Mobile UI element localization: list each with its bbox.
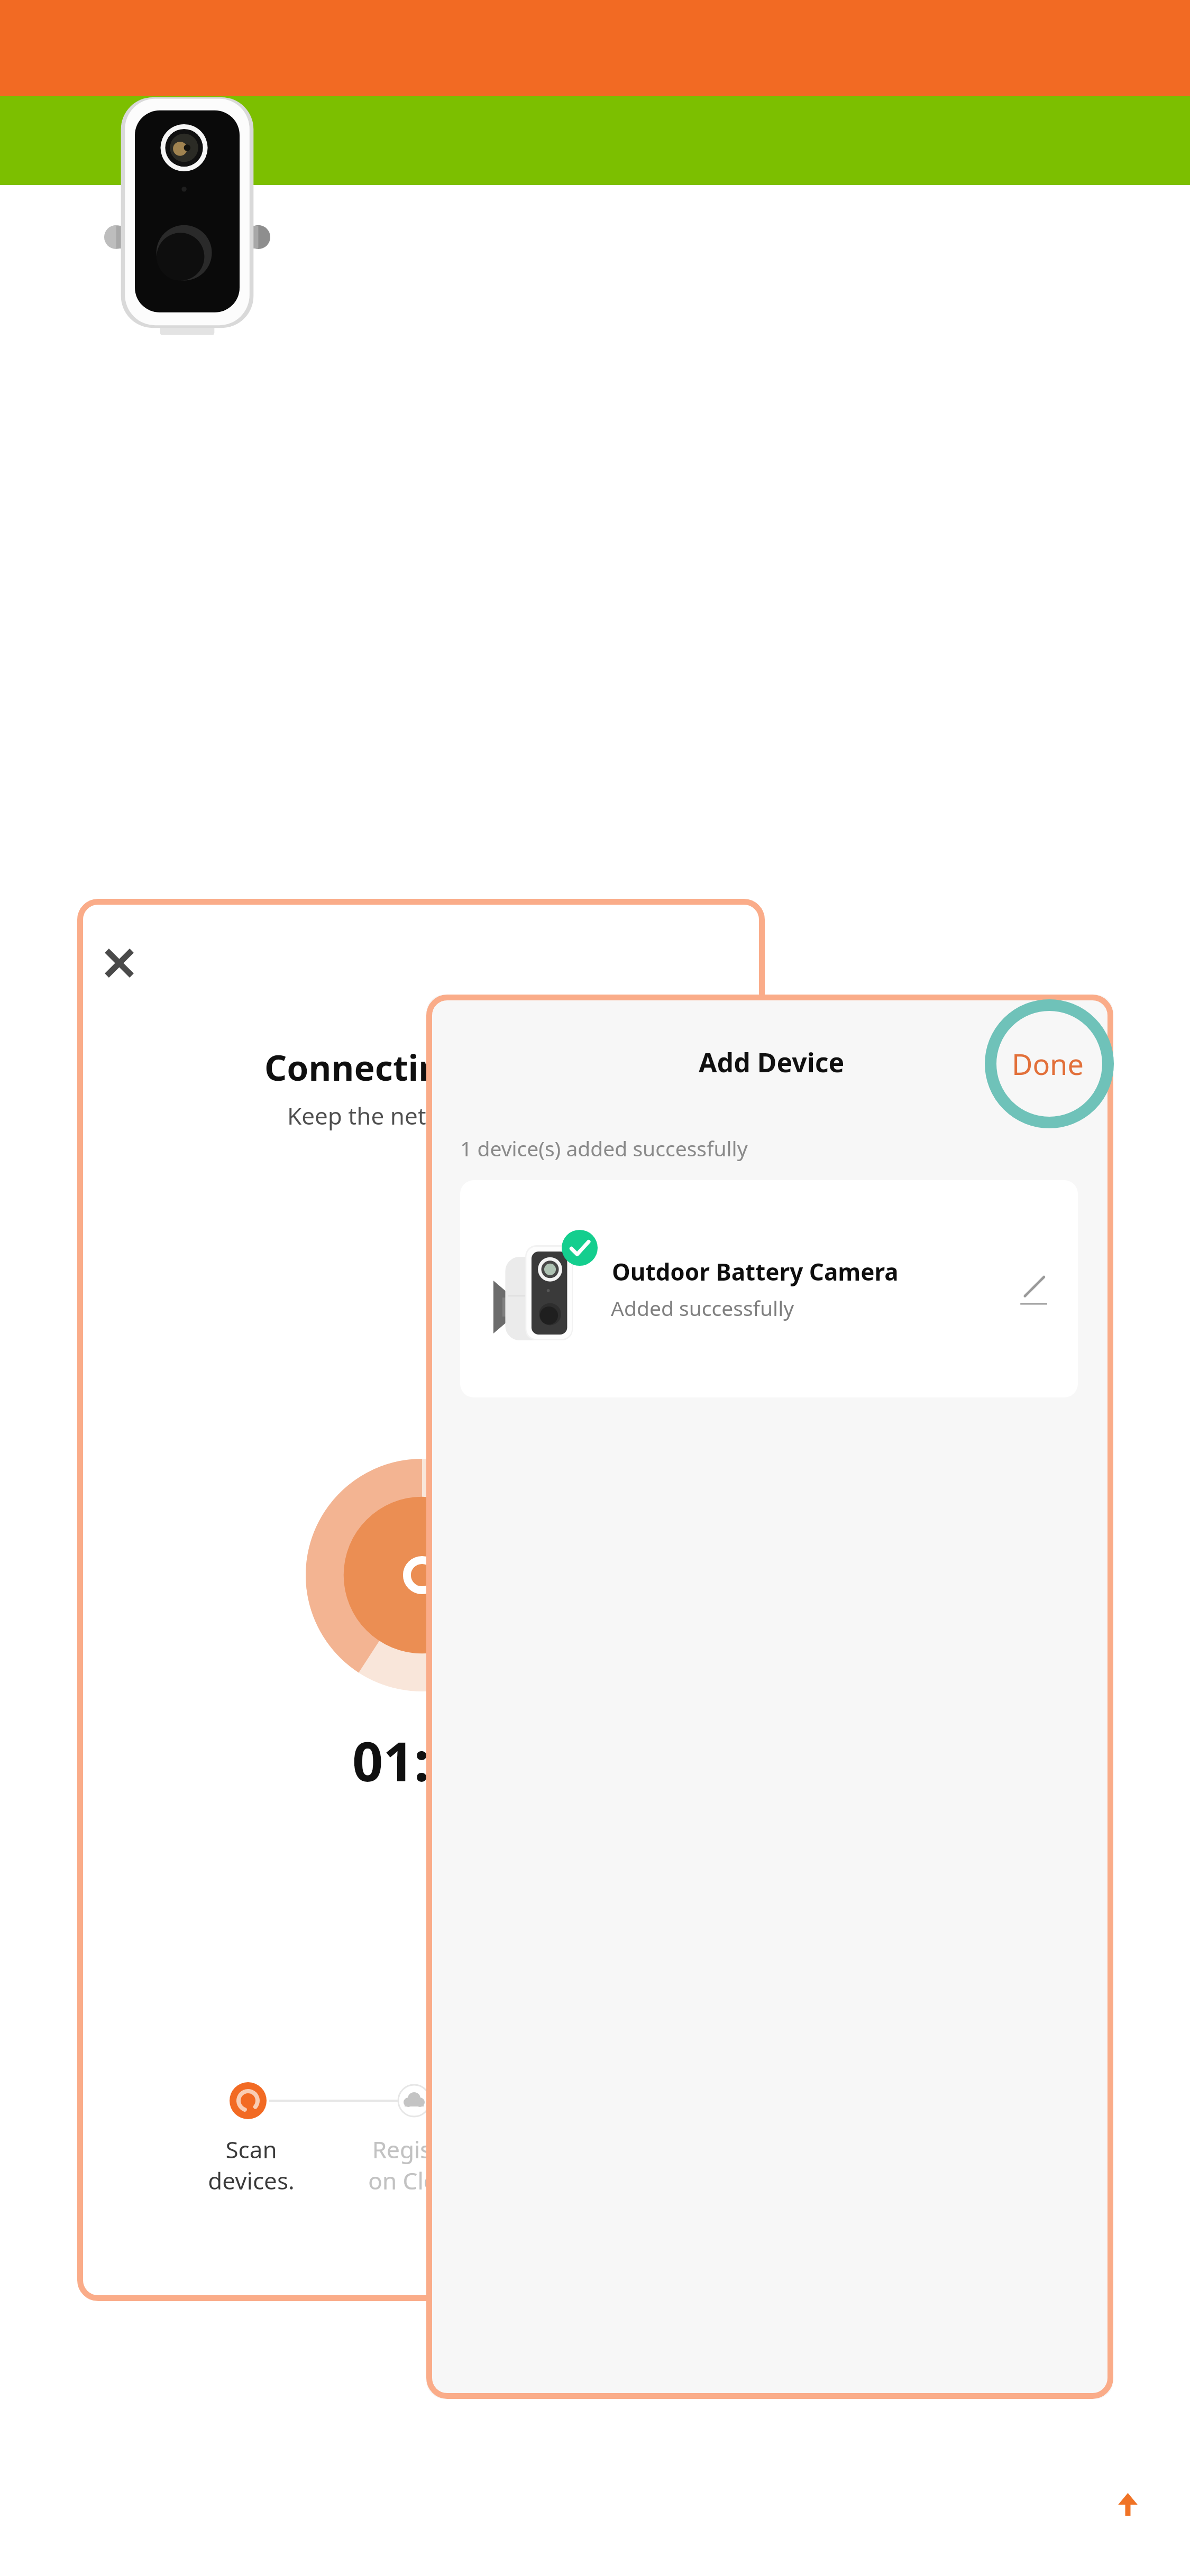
staticText: 01: <box>352 1724 429 1797</box>
button[interactable]: Outdoor Battery Camera <box>460 1180 1078 1397</box>
staticText: Scan devices. <box>188 2133 315 2196</box>
button[interactable]: Rename <box>1004 1261 1063 1319</box>
staticText: Done <box>1012 1044 1084 1083</box>
staticText: 1 device(s) added successfully <box>460 1134 748 1162</box>
button[interactable]: Scroll up <box>1106 2483 1149 2525</box>
staticText: Keep the network <box>287 1100 481 1131</box>
staticText: Added successfully <box>611 1294 794 1322</box>
staticText: Add Device <box>699 1044 845 1080</box>
button[interactable]: Done <box>1005 1037 1091 1090</box>
staticText: Outdoor Battery Camera <box>612 1256 899 1287</box>
staticText: Register on Cloud <box>354 2133 481 2196</box>
button[interactable]: Close <box>96 940 142 986</box>
staticText: Connecting <box>264 1043 463 1091</box>
